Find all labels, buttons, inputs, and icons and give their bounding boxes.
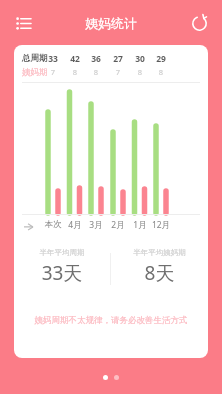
button[interactable]: Refresh (186, 10, 212, 36)
staticText: 半年平均姨妈期 (111, 248, 208, 257)
staticText: 7 (39, 67, 67, 77)
staticText: 30 (126, 53, 154, 65)
staticText: 36 (82, 53, 110, 65)
staticText: 7 (104, 67, 132, 77)
staticText: 本次 (39, 219, 67, 230)
staticText: 1月 (126, 219, 154, 231)
button[interactable]: 2月 (104, 219, 132, 231)
staticText: 27 (104, 53, 132, 65)
staticText: 33天 (14, 260, 110, 286)
button[interactable]: Menu (10, 10, 36, 36)
staticText: 姨妈期 (22, 67, 48, 78)
button[interactable]: 12月 (147, 219, 175, 231)
staticText: 8 (82, 67, 110, 77)
staticText: 8天 (111, 260, 208, 286)
staticText: 姨妈周期不太规律，请务必改善生活方式 (14, 315, 208, 326)
staticText: 半年平均周期 (14, 248, 110, 257)
button[interactable]: 3月 (82, 219, 110, 231)
staticText: 12月 (147, 219, 175, 231)
button[interactable]: 本次 (39, 219, 67, 230)
staticText: 29 (147, 53, 175, 65)
staticText: 8 (147, 67, 175, 77)
staticText: 8 (61, 67, 89, 77)
staticText: 4月 (61, 219, 89, 231)
other: Legend (24, 222, 33, 231)
staticText: 姨妈统计 (85, 15, 137, 31)
staticText: 2月 (104, 219, 132, 231)
staticText: 总周期 (22, 53, 48, 64)
staticText: 8 (126, 67, 154, 77)
button[interactable]: 4月 (61, 219, 89, 231)
staticText: 33 (39, 53, 67, 65)
button[interactable]: 1月 (126, 219, 154, 231)
staticText: 42 (61, 53, 89, 65)
staticText: 3月 (82, 219, 110, 231)
button[interactable]: 半年平均姨妈期 (111, 245, 208, 286)
button[interactable]: 半年平均周期 (14, 245, 110, 286)
